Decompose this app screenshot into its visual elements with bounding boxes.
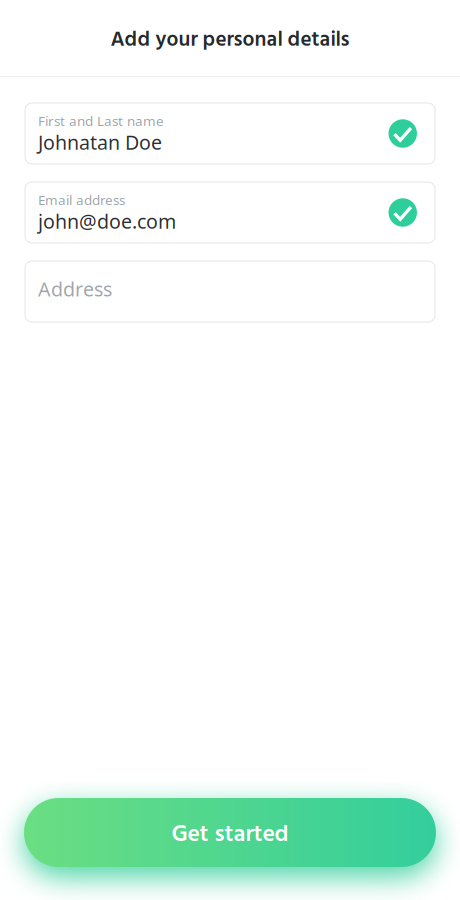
staticText: Email address	[38, 190, 125, 209]
button[interactable]: Email address	[25, 182, 435, 243]
staticText: Address	[38, 276, 112, 302]
staticText: Johnatan Doe	[38, 129, 162, 155]
button[interactable]: Address	[25, 261, 435, 322]
staticText: Add your personal details	[110, 24, 349, 57]
button[interactable]: First and Last name	[25, 103, 435, 164]
staticText: First and Last name	[38, 111, 164, 130]
staticText: Get started	[171, 816, 288, 854]
staticText: john@doe.com	[38, 208, 176, 234]
button[interactable]: Get started	[24, 798, 436, 867]
